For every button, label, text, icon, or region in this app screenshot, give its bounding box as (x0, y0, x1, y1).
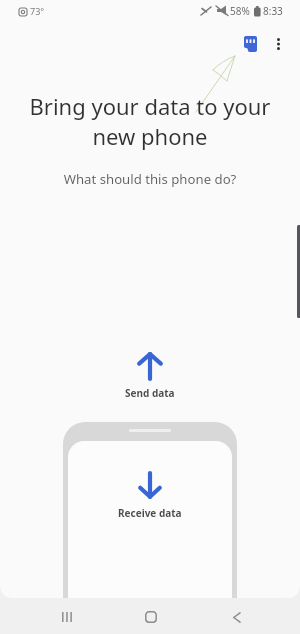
staticText: 58% (230, 4, 250, 18)
button[interactable]: More options (265, 31, 291, 57)
staticText: Receive data (118, 506, 182, 520)
staticText: 8:33 (263, 4, 283, 18)
staticText: 73° (30, 5, 45, 17)
button[interactable]: Home (135, 601, 167, 633)
button[interactable]: Back (220, 601, 252, 633)
staticText: Send data (125, 386, 175, 400)
staticText: Bring your data to your new phone (0, 91, 300, 152)
button[interactable]: SD card (235, 29, 265, 59)
button[interactable]: Recent apps (51, 601, 83, 633)
staticText: What should this phone do? (0, 170, 300, 188)
button[interactable]: Receive data (80, 461, 220, 532)
button[interactable]: Send data (75, 340, 225, 412)
